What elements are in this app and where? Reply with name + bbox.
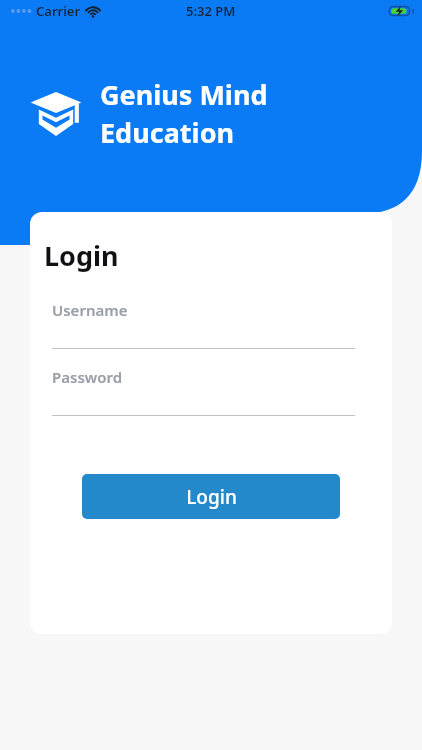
staticText: Genius Mind Education — [100, 76, 268, 151]
button[interactable]: Login — [82, 474, 340, 519]
staticText: Carrier — [36, 2, 81, 20]
staticText: Username — [52, 300, 128, 320]
staticText: Login — [44, 237, 119, 274]
button[interactable]: Username — [30, 300, 392, 349]
staticText: 5:32 PM — [186, 2, 236, 20]
other: Genius Mind Education logo — [30, 91, 82, 137]
staticText: Password — [52, 367, 123, 387]
button[interactable]: Password — [30, 367, 392, 416]
staticText: Login — [186, 484, 237, 510]
